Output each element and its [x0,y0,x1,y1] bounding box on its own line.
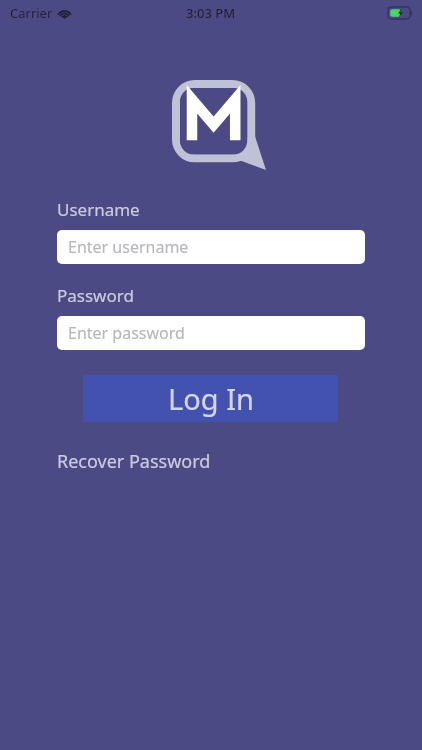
staticText: Enter password [68,322,185,344]
other: App logo [172,80,266,170]
button[interactable]: Recover Password [57,445,211,478]
button[interactable]: Enter username [57,230,365,264]
staticText: Recover Password [57,449,211,474]
button[interactable]: Enter password [57,316,365,350]
staticText: Password [57,284,134,307]
staticText: Username [57,198,140,221]
staticText: Carrier [10,4,53,22]
staticText: Enter username [68,236,189,258]
staticText: 3:03 PM [186,4,236,22]
button[interactable]: Log In [83,375,338,422]
staticText: Log In [168,379,254,418]
